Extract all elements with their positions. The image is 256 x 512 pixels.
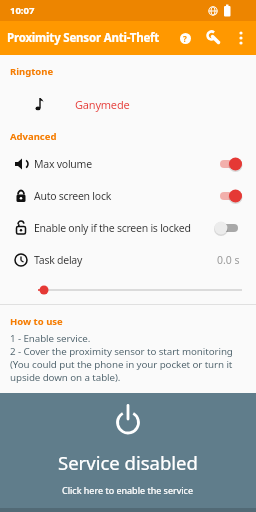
staticText: 10:07 bbox=[10, 4, 35, 17]
staticText: Max volume bbox=[34, 157, 92, 171]
button[interactable]: ? bbox=[173, 26, 197, 50]
button[interactable]: Enable only if the screen is locked bbox=[0, 212, 256, 244]
button[interactable]: Service disabled bbox=[0, 393, 256, 512]
staticText: Service disabled bbox=[58, 450, 198, 475]
button[interactable] bbox=[0, 276, 256, 304]
button[interactable]: Auto screen lock bbox=[0, 180, 256, 212]
button[interactable]: Task delay bbox=[0, 244, 256, 276]
staticText: Proximity Sensor Anti-Theft bbox=[7, 30, 160, 46]
staticText: 1 - Enable service. 2 - Cover the proxim… bbox=[10, 332, 233, 384]
staticText: Enable only if the screen is locked bbox=[34, 221, 191, 235]
staticText: Advanced bbox=[10, 130, 57, 143]
staticText: ? bbox=[183, 33, 187, 44]
staticText: How to use bbox=[10, 315, 63, 328]
staticText: 0.0 s bbox=[217, 253, 240, 267]
button[interactable]: Ganymede bbox=[0, 78, 256, 130]
button[interactable] bbox=[230, 27, 252, 49]
button[interactable] bbox=[202, 26, 226, 50]
staticText: Click here to enable the service bbox=[62, 484, 194, 496]
staticText: Ringtone bbox=[10, 65, 54, 78]
staticText: Auto screen lock bbox=[34, 189, 112, 203]
button[interactable]: Max volume bbox=[0, 148, 256, 180]
staticText: Task delay bbox=[34, 253, 83, 267]
staticText: Ganymede bbox=[75, 97, 130, 112]
